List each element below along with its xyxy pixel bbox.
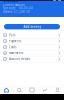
button[interactable]: Account details bbox=[0, 56, 64, 62]
button[interactable]: Trends bbox=[38, 86, 51, 95]
staticText: Balance £1,248.30 bbox=[3, 10, 30, 13]
staticText: MONZO bbox=[3, 0, 18, 3]
staticText: Pots bbox=[9, 33, 15, 37]
button[interactable]: Pots bbox=[0, 32, 64, 38]
staticText: Payments bbox=[9, 39, 21, 43]
staticText: Search bbox=[16, 93, 22, 95]
button[interactable]: Add money bbox=[4, 24, 60, 29]
button[interactable]: Statements bbox=[0, 50, 64, 56]
staticText: Home bbox=[4, 93, 8, 95]
button[interactable]: Payments bbox=[0, 38, 64, 44]
button[interactable]: Home bbox=[0, 86, 13, 95]
button[interactable]: Profile bbox=[51, 86, 64, 95]
staticText: Sort code · 04-00-04 bbox=[3, 6, 33, 10]
staticText: Add money bbox=[23, 25, 40, 28]
staticText: Trends bbox=[42, 93, 48, 95]
staticText: Statements bbox=[9, 51, 23, 55]
button[interactable]: Settings bbox=[58, 0, 61, 1]
staticText: Profile bbox=[55, 93, 60, 95]
button[interactable]: Search bbox=[13, 86, 26, 95]
button[interactable]: Search bbox=[53, 0, 56, 1]
button[interactable]: Cards bbox=[26, 86, 38, 95]
staticText: Cards bbox=[9, 45, 16, 49]
staticText: Current account bbox=[3, 3, 25, 6]
button[interactable]: Cards bbox=[0, 44, 64, 50]
staticText: Cards bbox=[29, 93, 34, 95]
staticText: Account details bbox=[9, 57, 30, 61]
